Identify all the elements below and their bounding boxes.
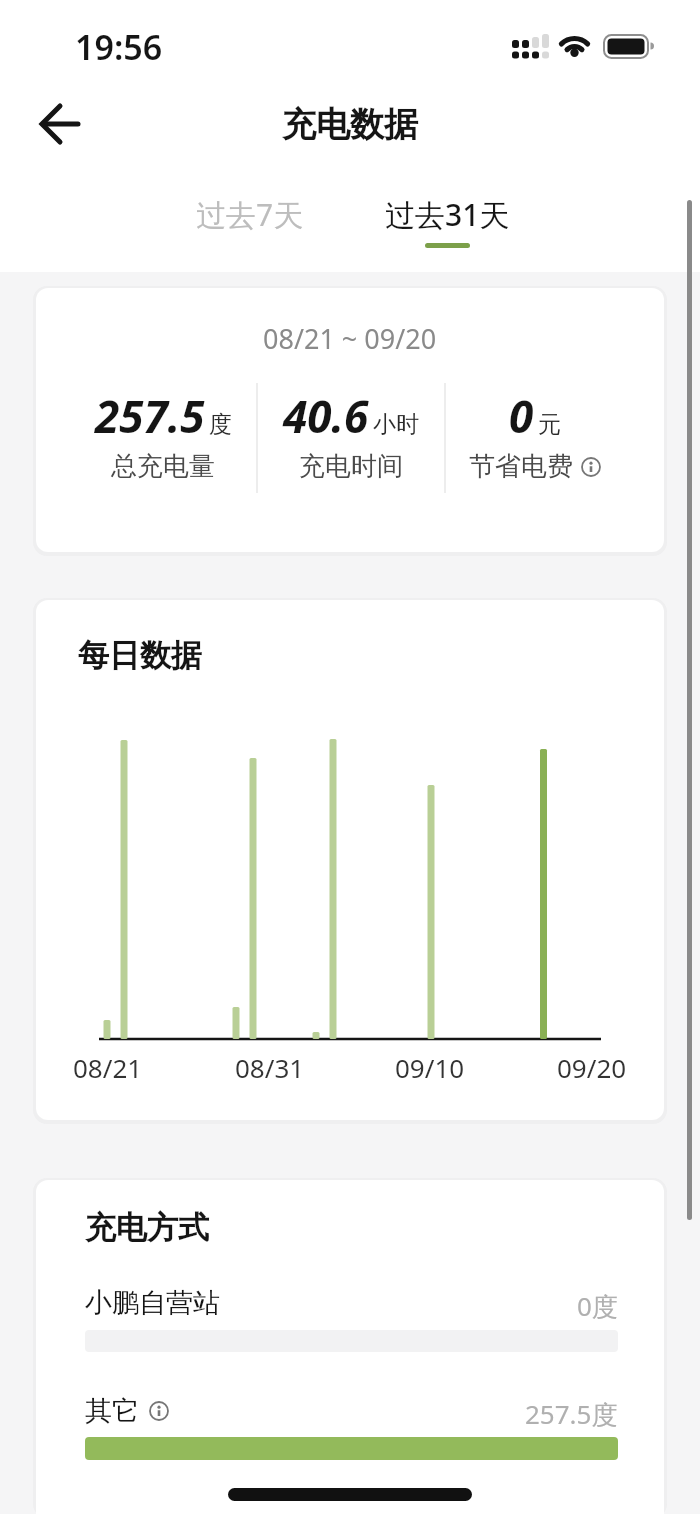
staticText: 08/21 ~ 09/20 xyxy=(263,320,437,357)
staticText: 节省电费 xyxy=(469,450,573,483)
staticText: 08/31 xyxy=(235,1050,305,1085)
staticText: 过去7天 xyxy=(196,194,304,235)
staticText: 元 xyxy=(538,410,561,439)
button[interactable]: 过去7天 xyxy=(180,188,320,240)
staticText: 充电方式 xyxy=(85,1208,209,1247)
staticText: 每日数据 xyxy=(78,636,202,675)
button[interactable] xyxy=(28,98,92,150)
staticText: 小鹏自营站 xyxy=(85,1286,220,1320)
button[interactable]: 过去31天 xyxy=(377,188,517,240)
staticText: 08/21 xyxy=(73,1050,143,1085)
staticText: 0度 xyxy=(577,1288,618,1324)
staticText: 小时 xyxy=(373,410,419,439)
staticText: 257.5 xyxy=(95,386,205,446)
staticText: 19:56 xyxy=(75,24,163,70)
staticText: 度 xyxy=(209,410,232,439)
staticText: 09/20 xyxy=(557,1050,627,1085)
staticText: 充电时间 xyxy=(299,450,403,483)
staticText: 40.6 xyxy=(283,386,369,446)
staticText: 257.5度 xyxy=(525,1396,618,1432)
staticText: 其它 xyxy=(85,1394,139,1428)
staticText: 0 xyxy=(509,386,534,446)
staticText: 充电数据 xyxy=(282,103,418,146)
staticText: 09/10 xyxy=(395,1050,465,1085)
staticText: 总充电量 xyxy=(111,450,215,483)
staticText: 过去31天 xyxy=(385,194,510,235)
